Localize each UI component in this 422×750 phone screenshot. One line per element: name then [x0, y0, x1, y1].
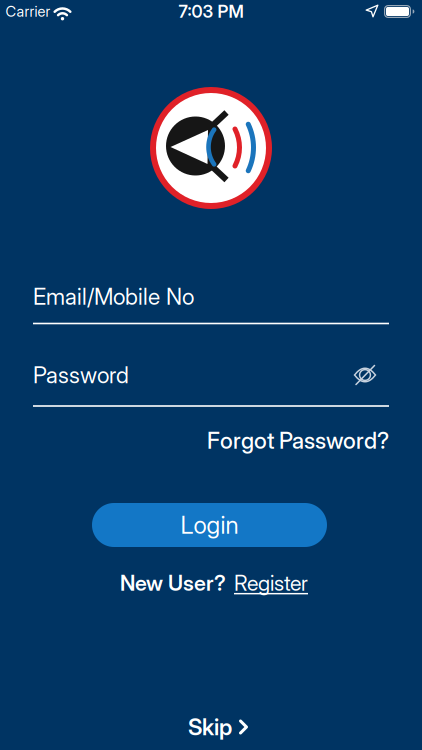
button[interactable]: Register — [234, 570, 308, 596]
staticText: Register — [234, 570, 308, 596]
button[interactable]: Login — [92, 503, 327, 547]
staticText: Login — [180, 511, 238, 539]
staticText: New User? — [120, 570, 226, 596]
button[interactable]: Forgot Password? — [33, 427, 389, 454]
staticText: 7:03 PM — [178, 1, 243, 22]
staticText: Password — [33, 362, 129, 388]
button[interactable]: Email/Mobile No — [33, 287, 389, 327]
staticText: Forgot Password? — [207, 427, 389, 454]
button[interactable]: Show password — [350, 361, 380, 389]
staticText: Carrier — [5, 3, 50, 20]
staticText: Skip — [188, 714, 232, 740]
staticText: Email/Mobile No — [33, 283, 194, 310]
button[interactable]: Password — [33, 364, 389, 408]
button[interactable]: Skip — [188, 714, 248, 740]
